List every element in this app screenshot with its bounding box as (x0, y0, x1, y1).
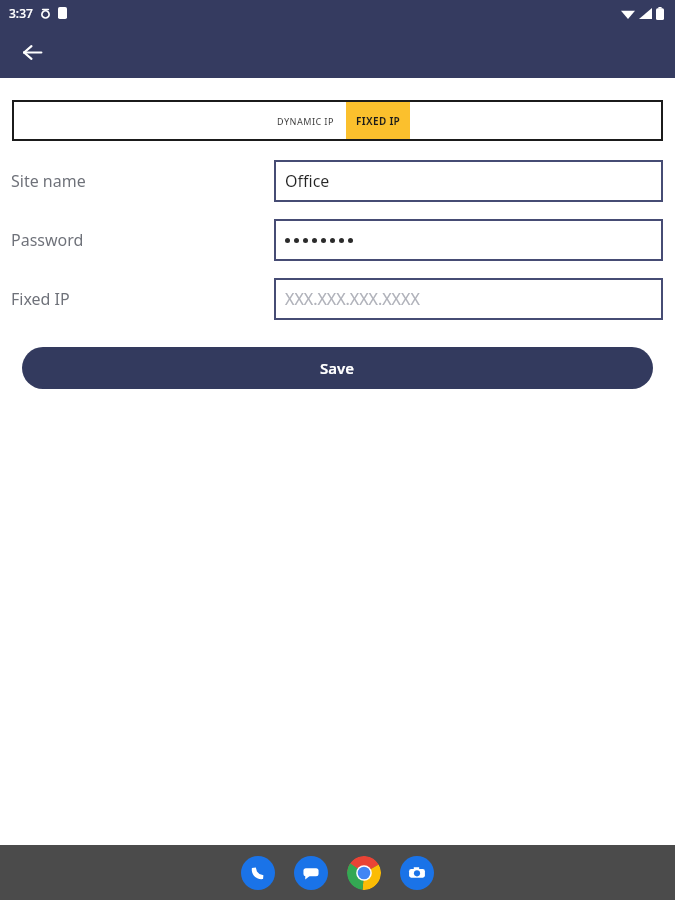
staticText: Fixed IP (11, 288, 70, 310)
button[interactable]: Back (12, 32, 52, 72)
staticText: Password (11, 229, 84, 251)
staticText: DYNAMIC IP (277, 115, 334, 127)
staticText: Save (320, 358, 355, 378)
button[interactable]: DYNAMIC IP (265, 100, 346, 141)
button[interactable]: FIXED IP (346, 100, 410, 141)
button[interactable]: Chrome (347, 856, 381, 890)
button[interactable]: Office (274, 160, 663, 202)
button[interactable] (274, 219, 663, 261)
staticText: Site name (11, 170, 86, 192)
staticText: FIXED IP (356, 114, 401, 128)
button[interactable]: Camera (400, 856, 434, 890)
staticText: XXX.XXX.XXX.XXXX (285, 288, 420, 310)
staticText: Office (285, 170, 330, 192)
button[interactable]: Messages (294, 856, 328, 890)
button[interactable]: Phone (241, 856, 275, 890)
staticText: 3:37 (9, 5, 33, 21)
button[interactable]: Save (22, 347, 653, 389)
button[interactable]: XXX.XXX.XXX.XXXX (274, 278, 663, 320)
